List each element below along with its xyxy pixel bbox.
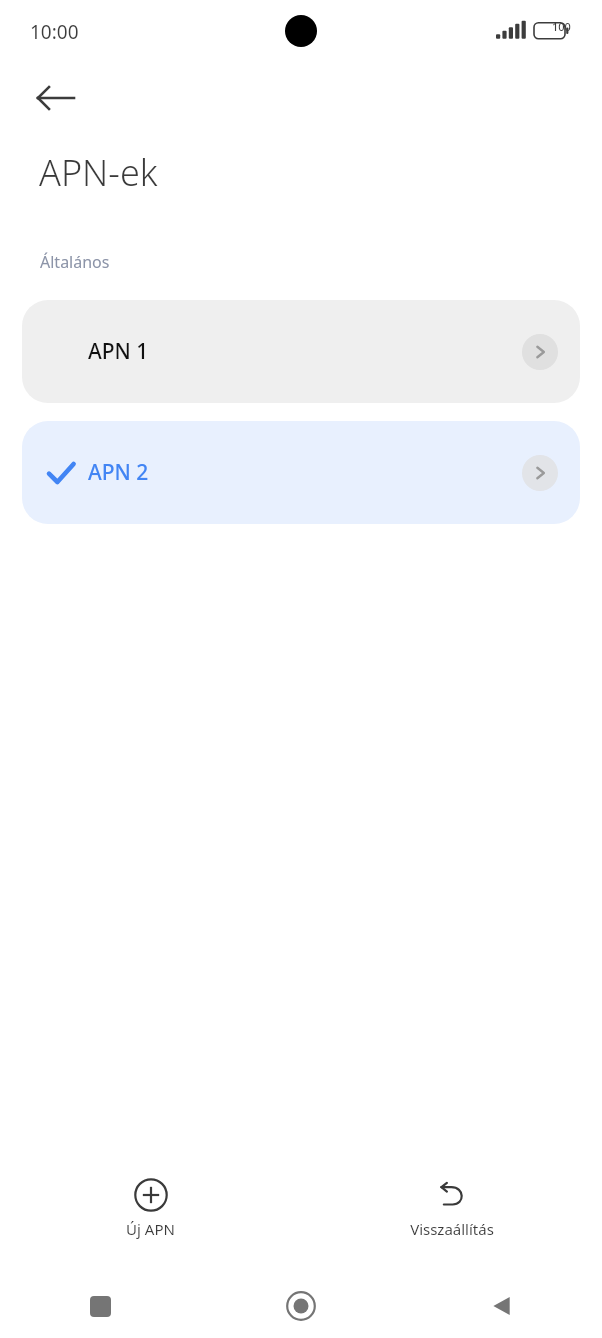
button[interactable]: Back	[401, 1274, 602, 1338]
button[interactable]: Open APN 1 details	[522, 334, 558, 370]
button[interactable]: Open APN 2 details	[522, 455, 558, 491]
button[interactable]: APN 1	[22, 300, 580, 403]
staticText: APN 2	[88, 458, 149, 487]
staticText: Új APN	[126, 1219, 175, 1239]
button[interactable]: Visszaállítás	[301, 1165, 602, 1255]
button[interactable]: Új APN	[0, 1165, 301, 1255]
button[interactable]: Home	[200, 1274, 401, 1338]
staticText: 10:00	[30, 19, 79, 45]
staticText: Általános	[40, 251, 110, 273]
staticText: 100	[552, 19, 571, 34]
button[interactable]: APN 2	[22, 421, 580, 524]
staticText: APN 1	[88, 337, 149, 366]
staticText: APN-ek	[39, 148, 158, 197]
button[interactable]: Recent apps	[0, 1274, 200, 1338]
staticText: Visszaállítás	[410, 1219, 494, 1239]
button[interactable]: Back	[30, 72, 82, 124]
